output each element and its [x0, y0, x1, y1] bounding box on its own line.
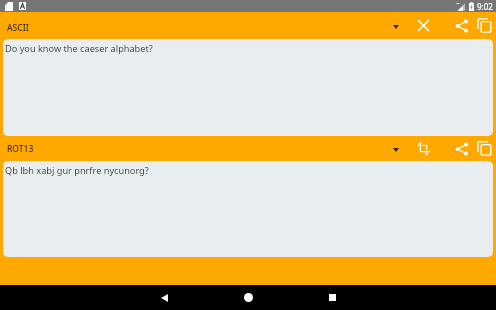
- button[interactable]: Transform: [410, 136, 437, 161]
- button[interactable]: More options: [383, 12, 408, 39]
- button[interactable]: Back: [136, 285, 192, 310]
- button[interactable]: Share: [449, 12, 475, 39]
- staticText: ASCII: [7, 22, 29, 34]
- staticText: Do you know the caeser alphabet?: [5, 42, 153, 55]
- button[interactable]: Recents: [304, 285, 360, 310]
- button[interactable]: Do you know the caeser alphabet?: [3, 39, 493, 136]
- button[interactable]: Copy: [473, 12, 496, 39]
- staticText: 9:02: [477, 1, 493, 12]
- button[interactable]: Share: [449, 136, 475, 161]
- staticText: Qb lbh xabj gur pnrfre nycunorg?: [5, 164, 149, 177]
- button[interactable]: Home: [220, 285, 276, 310]
- button[interactable]: Close: [410, 12, 437, 39]
- button[interactable]: Qb lbh xabj gur pnrfre nycunorg?: [3, 161, 493, 257]
- button[interactable]: Copy: [473, 136, 496, 161]
- button[interactable]: More options: [383, 136, 408, 161]
- staticText: ROT13: [7, 143, 34, 155]
